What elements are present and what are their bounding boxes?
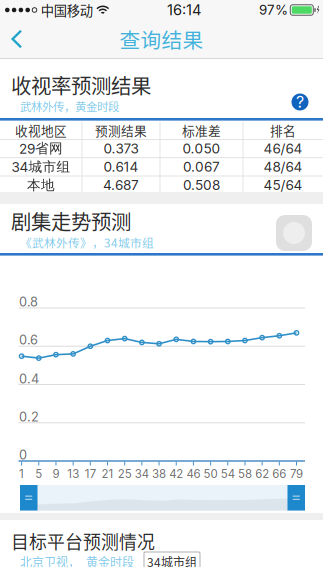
staticText: 21: [101, 467, 113, 481]
staticText: 9: [52, 467, 59, 481]
staticText: 收视率预测结果: [11, 70, 151, 99]
button[interactable]: Range start: [20, 485, 37, 510]
staticText: 45/64: [263, 177, 302, 193]
staticText: 66: [272, 467, 286, 481]
staticText: 13: [67, 467, 79, 481]
staticText: 5: [35, 467, 42, 481]
staticText: 29省网: [19, 140, 63, 157]
staticText: 58: [238, 467, 252, 481]
staticText: 50: [204, 467, 218, 481]
staticText: 79: [290, 467, 303, 481]
staticText: 34: [135, 467, 149, 481]
staticText: 54: [221, 467, 235, 481]
staticText: 0.2: [19, 409, 39, 424]
staticText: 0.508: [183, 177, 220, 193]
staticText: 0.8: [19, 294, 38, 309]
staticText: 0.6: [19, 332, 38, 347]
staticText: 97%: [259, 2, 288, 18]
staticText: 排名: [270, 121, 296, 139]
staticText: 黄金时段: [86, 553, 134, 567]
staticText: 北京卫视，: [20, 553, 80, 567]
staticText: 0.614: [103, 159, 138, 175]
staticText: 剧集走势预测: [11, 206, 131, 235]
staticText: 1: [19, 467, 24, 481]
staticText: 目标平台预测情况: [11, 528, 155, 554]
staticText: 38: [152, 467, 166, 481]
staticText: 34城市组: [147, 553, 197, 567]
staticText: 25: [118, 467, 132, 481]
staticText: 46: [186, 467, 200, 481]
staticText: 42: [169, 467, 183, 481]
staticText: 0.4: [19, 371, 39, 386]
staticText: 17: [85, 467, 96, 481]
button[interactable]: Back: [0, 20, 36, 57]
staticText: 62: [255, 467, 269, 481]
staticText: 《武林外传》，34城市组: [20, 234, 154, 251]
button[interactable]: Expand chart: [272, 212, 316, 254]
staticText: 中国移动: [41, 0, 93, 20]
staticText: ?: [296, 92, 304, 112]
staticText: 标准差: [182, 121, 221, 139]
staticText: 16:14: [167, 1, 201, 19]
staticText: 本地: [27, 177, 55, 194]
staticText: 0: [19, 447, 27, 462]
staticText: 48/64: [263, 159, 302, 175]
staticText: 34城市组: [11, 158, 70, 175]
button[interactable]: Range end: [287, 485, 305, 510]
staticText: 0.050: [182, 140, 220, 157]
staticText: 46/64: [263, 140, 302, 157]
staticText: 武林外传，黄金时段: [20, 98, 119, 115]
staticText: 0.067: [183, 159, 220, 175]
staticText: 0.373: [103, 140, 138, 157]
staticText: 预测结果: [95, 121, 147, 139]
staticText: 查询结果: [119, 24, 203, 54]
staticText: 收视地区: [15, 121, 67, 139]
button[interactable]: Help: [285, 88, 315, 116]
staticText: 4.687: [103, 177, 139, 193]
